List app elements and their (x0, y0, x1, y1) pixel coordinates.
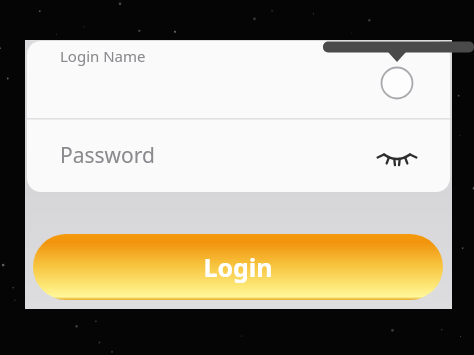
button[interactable]: Login (33, 234, 443, 300)
staticText: Login (203, 250, 273, 284)
button[interactable]: Select account (380, 66, 414, 100)
button[interactable]: Password (27, 119, 450, 192)
staticText: Login Name (60, 46, 146, 66)
button[interactable]: Show password (377, 138, 417, 178)
button[interactable]: Login Name (27, 41, 450, 118)
staticText: Password (60, 141, 155, 170)
